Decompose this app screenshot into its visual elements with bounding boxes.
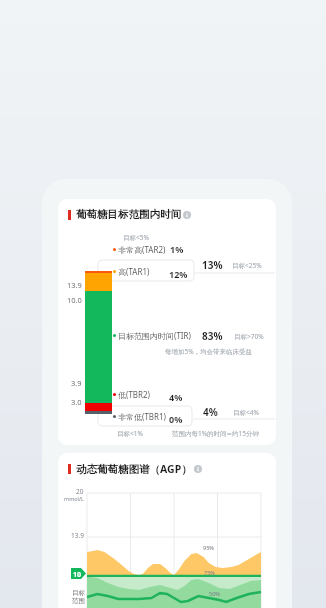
staticText: 83% [202,329,223,343]
staticText: 目标 [72,589,85,597]
staticText: 目标<1% [117,429,143,438]
staticText: 4% [169,391,183,403]
staticText: 每增加5%，均会带来临床受益 [165,347,253,356]
staticText: mmol/L [64,495,84,502]
staticText: 范围内每1%的时间≈约15分钟 [172,429,260,438]
staticText: 非常低(TBR1) [118,411,166,422]
staticText: 目标<25% [232,261,262,270]
staticText: 目标<4% [233,408,259,417]
staticText: 3.9 [71,378,82,388]
staticText: 动态葡萄糖图谱（AGP） [76,462,192,476]
staticText: 20 [76,487,84,496]
staticText: 非常高(TAR2) [118,244,166,255]
staticText: 1% [170,243,184,255]
staticText: 高(TAR1) [118,266,150,277]
staticText: 50% [209,590,220,597]
staticText: 10 [73,570,82,580]
staticText: 13% [202,258,223,272]
staticText: 95% [203,544,214,551]
staticText: 13.9 [67,280,82,290]
staticText: 低(TBR2) [118,389,150,400]
staticText: 目标>70% [234,332,264,341]
staticText: 葡萄糖目标范围内时间 [76,208,181,221]
staticText: 目标<5% [123,233,149,242]
button[interactable]: 葡萄糖目标范围内时间 [58,199,276,445]
staticText: 0% [169,413,183,425]
staticText: 12% [169,268,188,280]
staticText: 75% [204,569,215,576]
staticText: 范围 [72,597,85,605]
staticText: 10.0 [67,295,82,305]
staticText: 3.0 [71,397,82,407]
staticText: 13.9 [71,531,84,540]
staticText: 4% [203,405,218,419]
button[interactable]: 动态葡萄糖图谱（AGP） [58,453,276,608]
staticText: 目标范围内时间(TIR) [118,330,191,341]
